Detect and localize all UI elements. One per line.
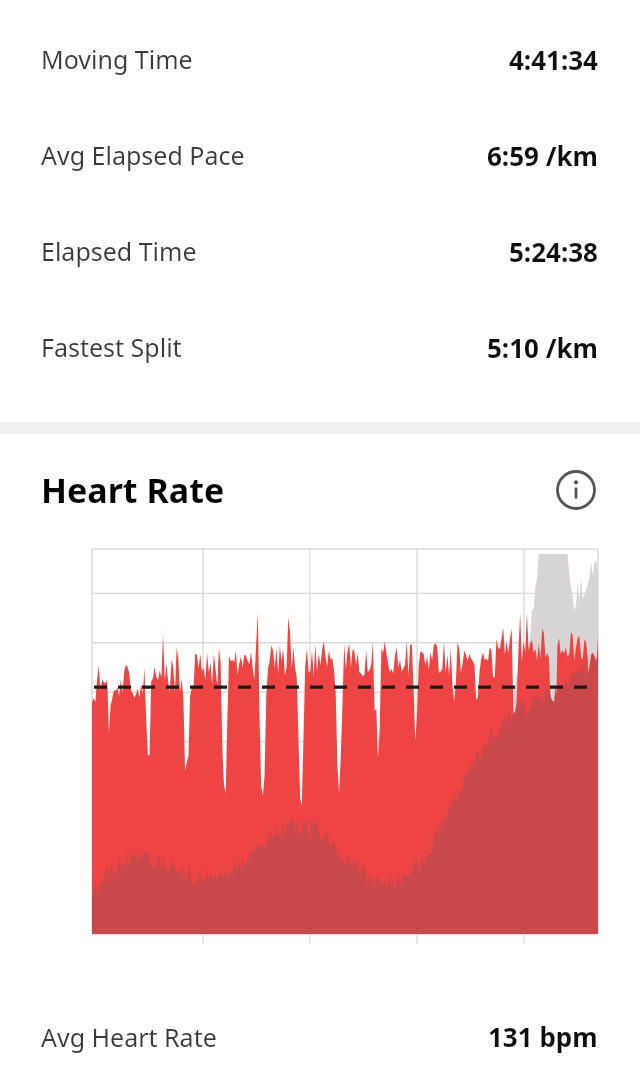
button[interactable]: Moving Time (0, 11, 640, 107)
button[interactable]: Avg Heart Rate (0, 989, 640, 1084)
staticText: 5:24:38 (509, 234, 598, 269)
staticText: Heart Rate (41, 467, 225, 513)
staticText: 131 bpm (488, 1019, 598, 1054)
staticText: Elapsed Time (41, 234, 197, 268)
staticText: 5:10 /km (487, 330, 598, 365)
staticText: 4:41:34 (509, 42, 598, 77)
button[interactable]: Heart Rate info (553, 467, 599, 513)
staticText: Moving Time (41, 42, 193, 76)
button[interactable]: Elapsed Time (0, 203, 640, 299)
staticText: Avg Heart Rate (41, 1020, 217, 1054)
button[interactable]: Fastest Split (0, 299, 640, 395)
staticText: Fastest Split (41, 330, 182, 364)
button[interactable]: Avg Elapsed Pace (0, 107, 640, 203)
staticText: 6:59 /km (487, 138, 598, 173)
staticText: Avg Elapsed Pace (41, 138, 245, 172)
